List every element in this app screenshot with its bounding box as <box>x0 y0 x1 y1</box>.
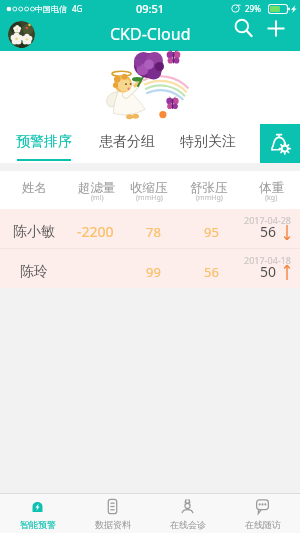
button[interactable]: 预警排序 <box>14 124 74 163</box>
staticText: 预警排序 <box>16 133 72 151</box>
staticText: 陈小敏 <box>13 223 55 241</box>
staticText: 智能预警 <box>20 519 56 530</box>
staticText: 78 <box>146 223 161 241</box>
button[interactable]: 特别关注 <box>178 124 238 163</box>
staticText: -2200 <box>77 222 114 241</box>
staticText: 患者分组 <box>99 133 155 151</box>
staticText: 收缩压 <box>130 180 168 196</box>
button[interactable]: Search <box>229 13 259 43</box>
staticText: 数据资料 <box>95 519 131 530</box>
staticText: 09:51 <box>136 1 165 16</box>
staticText: 在线随访 <box>245 519 281 530</box>
button[interactable]: 数据资料 <box>75 494 150 533</box>
staticText: 2017-04-18 <box>244 254 291 266</box>
staticText: 95 <box>204 223 219 241</box>
staticText: 姓名 <box>22 180 47 196</box>
staticText: 中国电信 <box>35 4 67 14</box>
staticText: (ml) <box>91 193 104 203</box>
staticText: (mmHg) <box>136 193 163 203</box>
staticText: 4G <box>72 3 83 14</box>
staticText: 特别关注 <box>180 133 236 151</box>
staticText: 超滤量 <box>78 180 116 196</box>
staticText: 舒张压 <box>190 180 228 196</box>
button[interactable]: 在线随访 <box>225 494 300 533</box>
button[interactable]: Alert settings <box>260 124 300 163</box>
button[interactable]: 2017-04-28 <box>0 209 300 248</box>
staticText: 56 <box>260 222 277 241</box>
staticText: 99 <box>146 263 161 281</box>
button[interactable]: Profile <box>8 21 35 48</box>
staticText: 在线会诊 <box>170 519 206 530</box>
button[interactable]: 2017-04-18 <box>0 249 300 288</box>
staticText: (kg) <box>265 193 278 203</box>
staticText: CKD-Cloud <box>110 23 191 45</box>
staticText: 29% <box>245 3 261 14</box>
staticText: 2017-04-28 <box>244 214 291 226</box>
button[interactable]: 智能预警 <box>0 494 75 533</box>
staticText: (mmHg) <box>196 193 223 203</box>
button[interactable]: 在线会诊 <box>150 494 225 533</box>
staticText: 陈玲 <box>20 263 48 281</box>
button[interactable]: Add <box>261 13 291 43</box>
staticText: 56 <box>204 263 219 281</box>
staticText: 体重 <box>259 180 284 196</box>
button[interactable]: 患者分组 <box>97 124 157 163</box>
staticText: 50 <box>260 262 277 281</box>
